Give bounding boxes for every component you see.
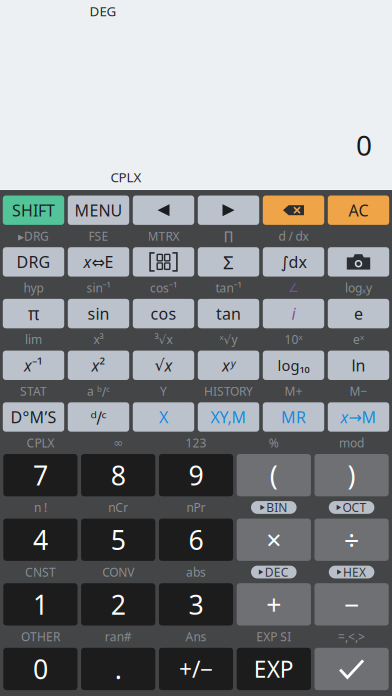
button[interactable]: Matrix — [133, 247, 194, 277]
staticText: ▸DRG — [18, 228, 49, 244]
staticText: Y — [160, 383, 167, 399]
staticText: M+ — [284, 383, 302, 399]
button[interactable]: ) — [314, 454, 389, 496]
button[interactable]: + — [237, 583, 311, 625]
button[interactable]: x — [68, 351, 129, 380]
staticText: ÷ — [344, 522, 359, 557]
button[interactable]: 5 — [81, 519, 155, 561]
button[interactable]: Right — [198, 195, 259, 225]
staticText: DEG — [89, 2, 116, 20]
staticText: hyp — [23, 280, 43, 296]
staticText: Σ — [223, 249, 234, 274]
staticText: sin — [87, 303, 109, 324]
staticText: log₁₀ — [277, 356, 309, 375]
button[interactable]: Left — [133, 195, 194, 225]
staticText: 4 — [33, 522, 48, 557]
button[interactable]: x — [328, 402, 389, 432]
button[interactable]: ln — [328, 351, 389, 380]
staticText: ʸ — [230, 355, 235, 376]
button[interactable]: 6 — [159, 519, 233, 561]
staticText: DEC — [265, 564, 289, 580]
staticText: CONV — [102, 564, 134, 580]
button[interactable]: Delete — [263, 195, 324, 225]
button[interactable]: Equals — [314, 648, 389, 690]
button[interactable]: log₁₀ — [263, 351, 324, 380]
button[interactable]: cos — [133, 299, 194, 328]
button[interactable]: ( — [237, 454, 311, 496]
button[interactable]: 2 — [81, 583, 155, 625]
staticText: 6 — [188, 522, 203, 557]
staticText: CNST — [25, 564, 56, 580]
staticText: x — [222, 355, 230, 376]
staticText: EXP — [254, 654, 294, 684]
button[interactable]: MR — [263, 402, 324, 432]
staticText: tan⁻¹ — [215, 280, 241, 296]
staticText: x — [83, 251, 91, 272]
button[interactable]: 8 — [81, 454, 155, 496]
staticText: X — [159, 406, 168, 428]
button[interactable]: 4 — [3, 519, 77, 561]
button[interactable]: tan — [198, 299, 259, 328]
button[interactable]: MENU — [68, 195, 129, 225]
button[interactable]: AC — [328, 195, 389, 225]
button[interactable]: SHIFT — [3, 195, 64, 225]
button[interactable]: x — [68, 247, 129, 277]
staticText: ran# — [105, 629, 132, 645]
staticText: MTRX — [147, 228, 179, 244]
button[interactable]: π — [3, 299, 64, 328]
staticText: x³ — [93, 331, 103, 347]
button[interactable]: × — [237, 519, 311, 561]
button[interactable]: 1 — [3, 583, 77, 625]
staticText: cos⁻¹ — [150, 280, 177, 296]
button[interactable]: 0 — [3, 648, 77, 690]
staticText: + — [266, 587, 281, 622]
button[interactable]: XY,M — [198, 402, 259, 432]
staticText: ) — [348, 457, 356, 493]
button[interactable]: Camera — [328, 247, 389, 277]
button[interactable]: − — [314, 583, 389, 625]
button[interactable]: 9 — [159, 454, 233, 496]
staticText: 5 — [111, 522, 126, 557]
staticText: ᵈ∕ᶜ — [90, 406, 106, 428]
staticText: 10ˣ — [284, 331, 302, 347]
button[interactable]: D°M’S — [3, 402, 64, 432]
button[interactable]: ᵈ∕ᶜ — [68, 402, 129, 432]
staticText: OCT — [343, 499, 367, 515]
button[interactable]: 3 — [159, 583, 233, 625]
button[interactable]: . — [81, 648, 155, 690]
staticText: D°M’S — [10, 406, 56, 428]
button[interactable]: 7 — [3, 454, 77, 496]
staticText: % — [269, 435, 279, 451]
button[interactable]: DRG — [3, 247, 64, 277]
staticText: →M — [348, 406, 376, 428]
staticText: 9 — [188, 457, 203, 493]
button[interactable]: sin — [68, 299, 129, 328]
staticText: √ — [154, 356, 164, 374]
button[interactable]: X — [133, 402, 194, 432]
button[interactable]: ÷ — [314, 519, 389, 561]
button[interactable]: Σ — [198, 247, 259, 277]
staticText: ⁻¹ — [32, 355, 43, 376]
staticText: +/− — [179, 654, 213, 684]
staticText: lim — [25, 331, 42, 347]
staticText: i — [291, 303, 295, 324]
button[interactable]: x — [198, 351, 259, 380]
button[interactable]: ∫dx — [263, 247, 324, 277]
button[interactable]: e — [328, 299, 389, 328]
staticText: CPLX — [26, 435, 54, 451]
staticText: × — [266, 522, 281, 557]
staticText: ∏ — [224, 229, 233, 243]
staticText: π — [28, 302, 39, 325]
staticText: − — [344, 587, 359, 622]
staticText: MR — [281, 406, 306, 428]
button[interactable]: EXP — [237, 648, 311, 690]
button[interactable]: i — [263, 299, 324, 328]
staticText: HISTORY — [204, 383, 253, 399]
staticText: CPLX — [110, 168, 141, 186]
button[interactable]: x — [3, 351, 64, 380]
staticText: 123 — [185, 435, 206, 451]
staticText: ∠ — [288, 281, 299, 294]
button[interactable]: √ — [133, 351, 194, 380]
staticText: nCr — [108, 499, 128, 515]
button[interactable]: +/− — [159, 648, 233, 690]
